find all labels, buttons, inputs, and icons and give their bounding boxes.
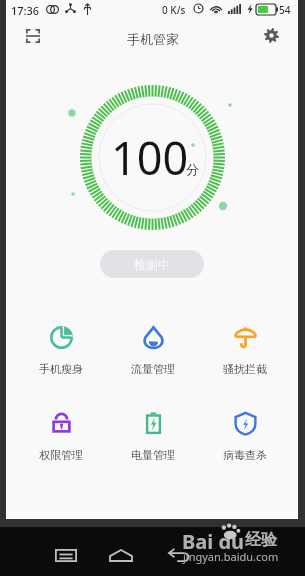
staticText: 经验 [245, 530, 277, 550]
button[interactable]: Home [104, 538, 138, 572]
staticText: 检测中 [134, 257, 170, 272]
button[interactable]: 电量管理 [113, 404, 193, 462]
button[interactable]: 病毒查杀 [205, 404, 285, 462]
staticText: 权限管理 [39, 448, 83, 462]
staticText: 骚扰拦截 [223, 362, 267, 376]
staticText: 0 K/s [162, 3, 186, 17]
button[interactable]: Recents [49, 538, 83, 572]
staticText: 手机瘦身 [39, 362, 83, 376]
staticText: 17:36 [11, 3, 40, 18]
button[interactable]: Back [162, 538, 196, 572]
staticText: 电量管理 [131, 448, 175, 462]
staticText: 手机管家 [127, 31, 179, 47]
button[interactable]: 手机瘦身 [21, 318, 101, 376]
staticText: Bai du [182, 528, 245, 555]
staticText: 病毒查杀 [223, 448, 267, 462]
button[interactable]: 检测中 [100, 250, 204, 278]
staticText: 流量管理 [131, 362, 175, 376]
button[interactable]: 流量管理 [113, 318, 193, 376]
staticText: 100 [111, 127, 189, 188]
button[interactable]: Scan [19, 22, 47, 50]
staticText: 分 [186, 161, 199, 177]
button[interactable]: Settings [257, 21, 285, 49]
button[interactable]: 骚扰拦截 [205, 318, 285, 376]
button[interactable]: 权限管理 [21, 404, 101, 462]
staticText: 54 [279, 3, 291, 17]
staticText: jingyan.baidu.com [183, 549, 279, 564]
